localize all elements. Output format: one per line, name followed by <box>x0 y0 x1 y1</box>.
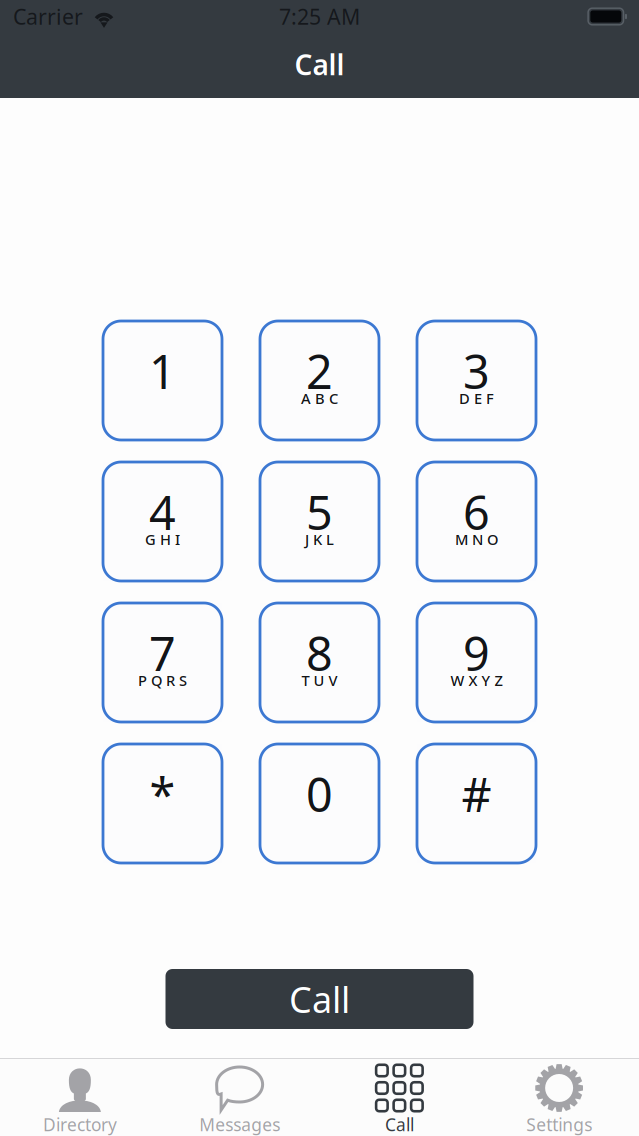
staticText: 0 <box>306 763 333 825</box>
staticText: Carrier <box>13 2 83 31</box>
staticText: D E F <box>459 388 494 408</box>
staticText: M N O <box>455 529 498 549</box>
staticText: 7 <box>149 622 176 684</box>
button[interactable]: 8 <box>260 603 379 722</box>
staticText: # <box>461 763 491 825</box>
staticText: 2 <box>306 340 333 402</box>
button[interactable]: Call <box>319 1059 479 1136</box>
staticText: 6 <box>463 481 490 543</box>
button[interactable]: 2 <box>260 321 379 440</box>
staticText: T U V <box>301 670 337 690</box>
staticText: J K L <box>305 529 334 549</box>
button[interactable]: 0 <box>260 744 379 863</box>
staticText: Directory <box>43 1113 117 1136</box>
staticText: 4 <box>149 481 176 543</box>
staticText: P Q R S <box>138 670 187 690</box>
staticText: * <box>149 763 175 825</box>
button[interactable]: 5 <box>260 462 379 581</box>
button[interactable]: Call <box>165 969 473 1029</box>
staticText: Messages <box>199 1113 280 1136</box>
button[interactable]: 1 <box>103 321 222 440</box>
button[interactable]: Messages <box>160 1059 320 1136</box>
button[interactable]: Settings <box>479 1059 639 1136</box>
staticText: W X Y Z <box>450 670 502 690</box>
staticText: Call <box>385 1113 414 1136</box>
button[interactable]: 9 <box>417 603 536 722</box>
staticText: 3 <box>463 340 490 402</box>
button[interactable]: 4 <box>103 462 222 581</box>
button[interactable]: # <box>417 744 536 863</box>
staticText: Settings <box>526 1113 592 1136</box>
staticText: A B C <box>301 388 338 408</box>
button[interactable]: 6 <box>417 462 536 581</box>
button[interactable]: * <box>103 744 222 863</box>
staticText: 8 <box>306 622 333 684</box>
staticText: Call <box>289 975 350 1023</box>
staticText: Call <box>294 46 344 83</box>
staticText: 9 <box>463 622 490 684</box>
staticText: 1 <box>149 340 176 402</box>
staticText: 7:25 AM <box>279 2 360 31</box>
button[interactable]: Directory <box>0 1059 160 1136</box>
button[interactable]: 3 <box>417 321 536 440</box>
staticText: 5 <box>306 481 333 543</box>
button[interactable]: 7 <box>103 603 222 722</box>
staticText: G H I <box>145 529 180 549</box>
